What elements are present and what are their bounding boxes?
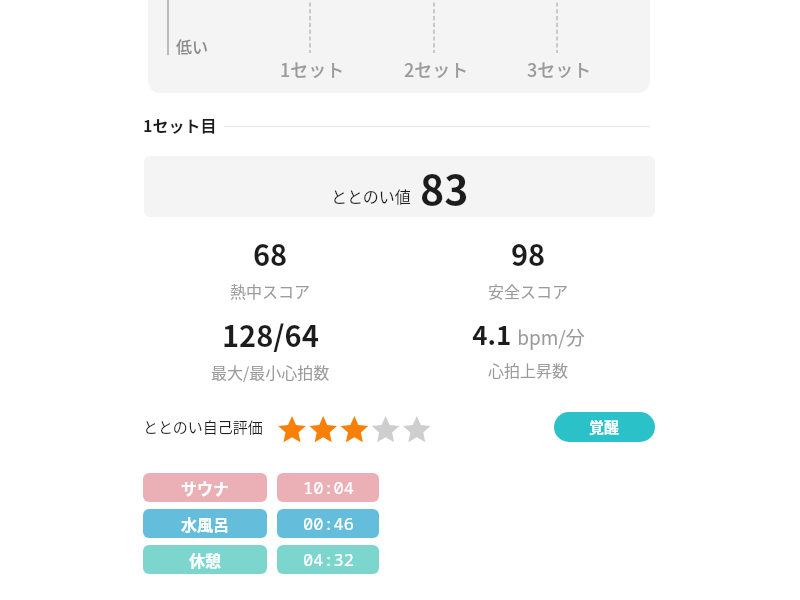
staticText: 4.1 bpm/分 [472, 315, 585, 353]
button[interactable]: 00:46 [277, 509, 379, 538]
staticText: 128/64 [222, 313, 319, 355]
staticText: 98 [511, 232, 546, 274]
staticText: 休憩 [189, 548, 222, 571]
button[interactable]: Rating 3 of 5 stars [276, 411, 428, 443]
button[interactable]: サウナ [143, 473, 267, 502]
staticText: サウナ [181, 476, 230, 499]
button[interactable]: 覚醒 [554, 412, 655, 442]
button[interactable]: 水風呂 [143, 509, 267, 538]
staticText: 最大/最小心拍数 [211, 360, 330, 383]
button[interactable]: 04:32 [277, 545, 379, 574]
staticText: ととのい値 [331, 184, 411, 207]
staticText: 04:32 [303, 548, 354, 571]
staticText: 覚醒 [589, 416, 620, 438]
staticText: 83 [420, 157, 469, 216]
staticText: 1セット目 [143, 113, 217, 136]
staticText: 68 [253, 232, 288, 274]
staticText: 熱中スコア [230, 279, 311, 302]
staticText: 心拍上昇数 [488, 358, 569, 381]
staticText: 安全スコア [488, 279, 569, 302]
staticText: 水風呂 [181, 512, 230, 535]
staticText: ととのい自己評価 [143, 416, 263, 438]
staticText: 10:04 [303, 476, 354, 499]
button[interactable]: 休憩 [143, 545, 267, 574]
staticText: 1セット [280, 56, 345, 82]
staticText: 低い [176, 34, 209, 57]
button[interactable]: ととのい値 [144, 156, 655, 217]
button[interactable]: 10:04 [277, 473, 379, 502]
staticText: 2セット [404, 56, 469, 82]
staticText: 3セット [527, 56, 592, 82]
staticText: 00:46 [303, 512, 354, 535]
